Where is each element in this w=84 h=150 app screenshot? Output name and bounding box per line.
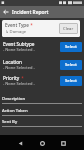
staticText: * bbox=[20, 75, 24, 81]
staticText: Location bbox=[3, 59, 22, 65]
button[interactable]: Back bbox=[0, 6, 12, 18]
staticText: Select bbox=[65, 62, 77, 68]
button[interactable]: Event Type bbox=[2, 20, 80, 37]
button[interactable]: Select bbox=[60, 76, 82, 86]
button[interactable]: Clear bbox=[59, 23, 78, 34]
button[interactable]: Select bbox=[60, 42, 82, 52]
staticText: Priority bbox=[3, 75, 20, 81]
button[interactable]: Location bbox=[0, 59, 84, 70]
button[interactable]: Select bbox=[60, 60, 82, 70]
staticText: * bbox=[29, 22, 33, 28]
staticText: - None Selected - bbox=[3, 81, 35, 86]
staticText: - None Selected - bbox=[3, 65, 35, 70]
staticText: ↳ Damage bbox=[5, 29, 27, 35]
staticText: Action Taken bbox=[2, 107, 28, 113]
staticText: Description bbox=[2, 95, 26, 101]
staticText: Clear bbox=[63, 26, 74, 32]
staticText: Sent By bbox=[2, 118, 18, 124]
staticText: Event Subtype bbox=[3, 41, 35, 47]
button[interactable]: Home bbox=[36, 137, 48, 149]
button[interactable]: Description bbox=[0, 95, 84, 106]
button[interactable]: Recent apps bbox=[57, 137, 69, 149]
button[interactable]: Sent By bbox=[0, 118, 84, 129]
staticText: Event Type bbox=[5, 22, 29, 28]
button[interactable]: Event Subtype bbox=[0, 41, 84, 52]
button[interactable]: Back bbox=[14, 137, 26, 149]
staticText: Incident Report bbox=[12, 9, 49, 16]
staticText: Select bbox=[65, 44, 77, 50]
button[interactable]: Priority bbox=[0, 75, 84, 86]
button[interactable]: Action Taken bbox=[0, 107, 84, 118]
staticText: Select bbox=[65, 78, 77, 84]
staticText: - None Selected - bbox=[3, 47, 35, 52]
